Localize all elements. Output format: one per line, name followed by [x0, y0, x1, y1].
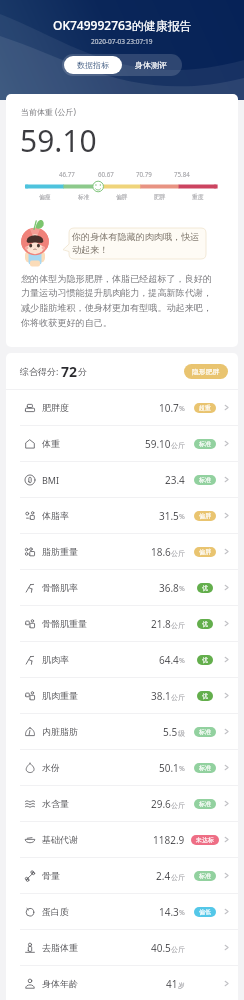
staticText: %	[179, 656, 185, 666]
button[interactable]: 肥胖度	[6, 390, 238, 425]
staticText: 综合得分:	[20, 365, 61, 377]
staticText: 身体测评	[135, 60, 167, 70]
staticText: 分	[78, 366, 87, 377]
button[interactable]: 身体测评	[122, 56, 180, 74]
other: Details	[222, 979, 231, 988]
staticText: 29.6	[151, 797, 171, 811]
staticText: %	[179, 584, 185, 594]
staticText: 36.8	[159, 581, 179, 595]
staticText: 偏低	[199, 908, 211, 916]
staticText: %	[179, 764, 185, 774]
staticText: 标准	[199, 764, 211, 772]
staticText: 体重	[42, 438, 60, 449]
staticText: 超重	[199, 404, 211, 412]
staticText: 5.5	[163, 725, 178, 739]
staticText: 64.4	[159, 653, 179, 667]
staticText: 骨量	[42, 870, 60, 881]
staticText: 肌肉率	[42, 654, 69, 665]
staticText: 38.1	[151, 689, 171, 703]
other: Details	[222, 907, 231, 916]
button[interactable]: 基础代谢	[6, 822, 238, 857]
staticText: 标准	[199, 728, 211, 736]
staticText: 标准	[199, 800, 211, 808]
staticText: %	[179, 404, 185, 414]
other: Details	[222, 835, 231, 844]
other: Details	[222, 511, 231, 520]
staticText: 60.67	[98, 170, 114, 178]
staticText: 41	[166, 977, 178, 991]
staticText: 50.1	[159, 761, 179, 775]
button[interactable]: 体重	[6, 426, 238, 461]
button[interactable]: 水份	[6, 750, 238, 785]
staticText: 18.6	[151, 545, 171, 559]
staticText: 75.84	[174, 170, 190, 178]
staticText: 岁	[178, 981, 185, 990]
staticText: 公斤	[171, 693, 185, 702]
button[interactable]: 骨量	[6, 858, 238, 893]
button[interactable]: 内脏脂肪	[6, 714, 238, 749]
staticText: 你的身体有隐藏的肉肉哦，快运 动起来！	[72, 231, 200, 256]
staticText: 偏胖	[199, 548, 211, 556]
staticText: 您的体型为隐形肥胖，体脂已经超标了，良好的力量运动习惯能提升肌肉能力，提高新陈代…	[21, 273, 221, 329]
staticText: 公斤	[171, 549, 185, 558]
staticText: %	[179, 908, 185, 918]
button[interactable]: 蛋白质	[6, 894, 238, 929]
other: Details	[222, 691, 231, 700]
button[interactable]: 隐形肥胖	[184, 364, 228, 379]
staticText: 基础代谢	[42, 834, 78, 845]
staticText: 偏胖	[199, 512, 211, 520]
staticText: 公斤	[171, 621, 185, 630]
staticText: 体脂率	[42, 510, 69, 521]
staticText: 级	[178, 729, 185, 738]
other: Details	[222, 583, 231, 592]
button[interactable]: 去脂体重	[6, 930, 238, 965]
staticText: 当前体重 (公斤)	[21, 106, 76, 117]
staticText: 偏胖	[116, 193, 128, 200]
other: Details	[222, 943, 231, 952]
staticText: %	[179, 512, 185, 522]
button[interactable]: 体脂率	[6, 498, 238, 533]
button[interactable]: 身体年龄	[6, 966, 238, 1000]
staticText: 59.10	[20, 120, 97, 161]
staticText: 优	[202, 656, 208, 664]
staticText: 肌肉重量	[42, 690, 78, 701]
staticText: 2.4	[156, 869, 171, 883]
other: Details	[222, 619, 231, 628]
button[interactable]: 综合得分:	[6, 353, 238, 389]
staticText: 标准	[199, 872, 211, 880]
staticText: 肥胖度	[42, 402, 69, 413]
other: Details	[222, 799, 231, 808]
staticText: 优	[202, 584, 208, 592]
staticText: 数据指标	[77, 60, 109, 70]
staticText: 14.3	[159, 905, 179, 919]
staticText: 公斤	[171, 441, 185, 450]
button[interactable]: 水含量	[6, 786, 238, 821]
staticText: 脂肪重量	[42, 546, 78, 557]
staticText: 59.10	[145, 437, 171, 451]
staticText: 31.5	[159, 509, 179, 523]
other: Details	[222, 727, 231, 736]
staticText: 未达标	[196, 836, 214, 844]
button[interactable]: 骨骼肌重量	[6, 606, 238, 641]
button[interactable]: 脂肪重量	[6, 534, 238, 569]
staticText: 46.77	[59, 170, 75, 178]
button[interactable]: BMI	[6, 462, 238, 497]
other: Details	[222, 439, 231, 448]
other: Details	[222, 871, 231, 880]
staticText: 公斤	[171, 801, 185, 810]
button[interactable]: 肌肉率	[6, 642, 238, 677]
staticText: 标准	[78, 193, 90, 200]
staticText: 身体年龄	[42, 978, 78, 989]
button[interactable]: 肌肉重量	[6, 678, 238, 713]
staticText: 23.4	[165, 473, 185, 487]
other: Details	[222, 403, 231, 412]
staticText: 公斤	[171, 873, 185, 882]
button[interactable]: 骨骼肌率	[6, 570, 238, 605]
staticText: 内脏脂肪	[42, 726, 78, 737]
staticText: 标准	[199, 440, 211, 448]
staticText: 优	[202, 692, 208, 700]
staticText: 水含量	[42, 798, 69, 809]
staticText: 水份	[42, 762, 60, 773]
button[interactable]: 数据指标	[64, 56, 122, 74]
staticText: BMI	[42, 474, 60, 486]
